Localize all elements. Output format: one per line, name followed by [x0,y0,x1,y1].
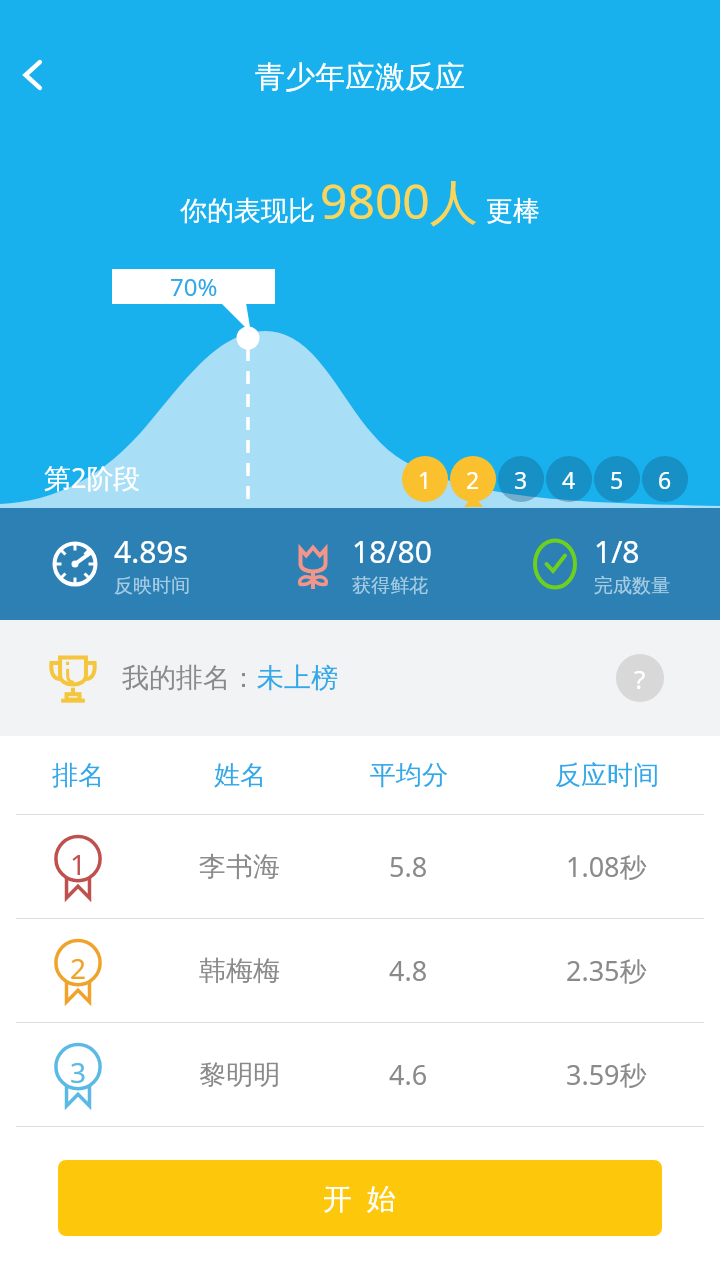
button[interactable]: Back [2,44,64,106]
staticText: 更棒 [486,194,540,228]
staticText: 4 [562,464,576,495]
staticText: 反应时间 [555,759,659,792]
staticText: 排名 [52,759,104,792]
button[interactable]: 4 [545,455,593,503]
staticText: 1.08秒 [566,848,647,885]
staticText: 9800人 [320,168,478,234]
button[interactable]: 3 [0,1023,720,1126]
button[interactable]: 2 [0,919,720,1022]
staticText: 青少年应激反应 [255,58,465,96]
button[interactable]: Help [616,654,664,702]
staticText: 韩梅梅 [199,954,280,988]
staticText: 完成数量 [594,574,670,598]
button[interactable]: 6 [641,455,689,503]
staticText: 1/8 [594,531,640,572]
staticText: 3.59秒 [566,1056,647,1093]
staticText: 李书海 [199,850,280,884]
staticText: 我的排名： [122,661,257,695]
staticText: 获得鲜花 [352,574,428,598]
button[interactable]: 1 [401,455,449,503]
button[interactable]: 我的排名： [122,661,616,695]
staticText: 平均分 [370,759,448,792]
staticText: 1 [418,464,432,495]
staticText: 3 [514,464,528,495]
staticText: 姓名 [214,759,266,792]
staticText: 第2阶段 [44,459,141,496]
staticText: 5.8 [389,848,428,885]
staticText: 黎明明 [199,1058,280,1092]
button[interactable]: 1 [0,815,720,918]
staticText: 2 [466,464,480,495]
staticText: 开 始 [323,1178,397,1218]
button[interactable]: 3 [497,455,545,503]
staticText: 2.35秒 [566,952,647,989]
staticText: 18/80 [352,531,432,572]
staticText: 5 [610,464,624,495]
staticText: 1 [70,845,87,883]
staticText: 4.8 [389,952,428,989]
staticText: 你的表现比 [180,194,315,228]
staticText: 6 [658,464,672,495]
button[interactable]: 5 [593,455,641,503]
staticText: 2 [70,949,87,987]
staticText: 3 [70,1053,87,1091]
staticText: 4.89s [114,531,188,572]
staticText: 未上榜 [257,661,338,695]
staticText: 反映时间 [114,574,190,598]
staticText: 4.6 [389,1056,428,1093]
staticText: 70% [170,270,218,303]
staticText: ? [634,661,646,696]
button[interactable]: 2 [449,455,497,503]
button[interactable]: 开 始 [58,1160,662,1236]
